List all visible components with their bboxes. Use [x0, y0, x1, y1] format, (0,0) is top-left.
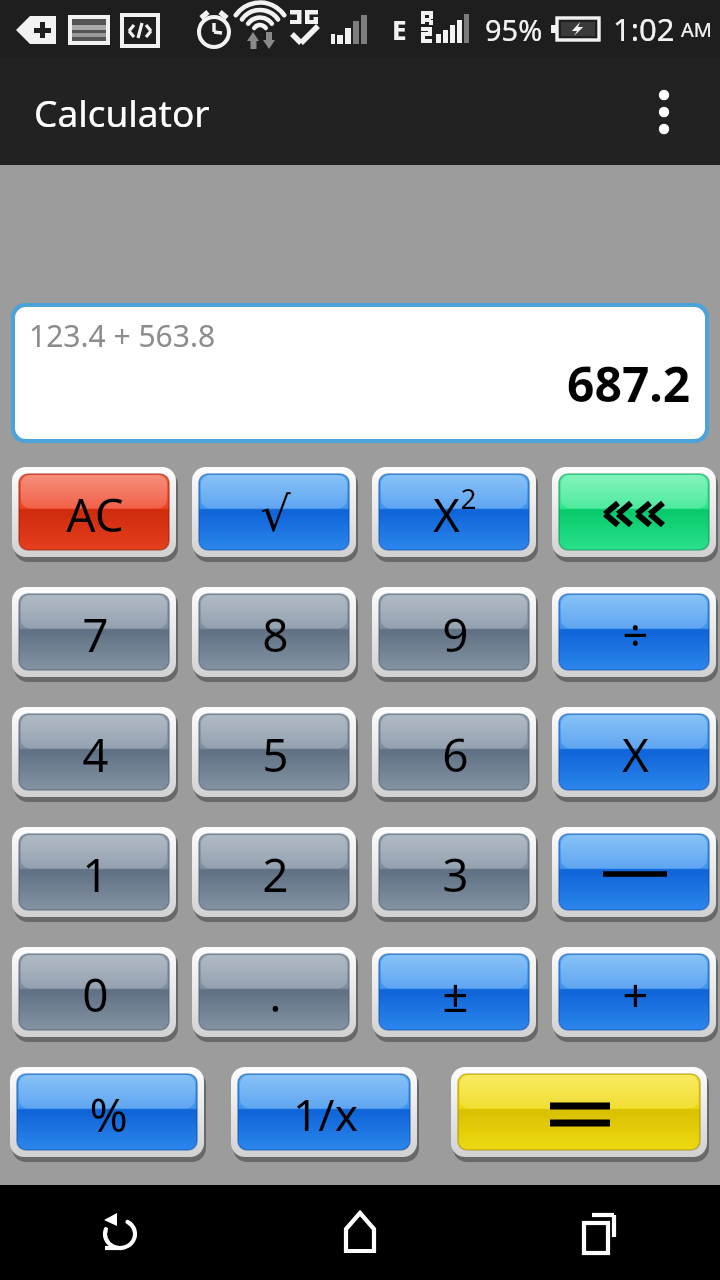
staticText: .	[269, 963, 282, 1026]
button[interactable]: Square	[372, 467, 538, 561]
staticText: E	[392, 12, 407, 47]
button[interactable]: Plus	[552, 947, 718, 1041]
staticText: AC	[66, 483, 124, 546]
button[interactable]: 5	[192, 707, 358, 801]
staticText: 687.2	[567, 351, 691, 416]
button[interactable]: Home	[240, 1185, 480, 1280]
button[interactable]: Decimal point	[192, 947, 358, 1041]
button[interactable]: Back	[0, 1185, 240, 1280]
staticText: +	[622, 963, 649, 1026]
staticText: ±	[442, 963, 469, 1026]
staticText: Calculator	[34, 87, 210, 137]
button[interactable]: 3	[372, 827, 538, 921]
staticText: √	[260, 486, 291, 542]
button[interactable]: Divide	[552, 587, 718, 681]
staticText: 1:02	[613, 8, 675, 50]
button[interactable]: Percent	[10, 1067, 206, 1161]
staticText: 123.4 + 563.8	[29, 315, 216, 356]
staticText: 6	[442, 723, 469, 786]
button[interactable]: Multiply	[552, 707, 718, 801]
staticText: 2	[460, 479, 477, 517]
staticText: 1/x	[293, 1084, 358, 1144]
staticText: ÷	[622, 603, 649, 666]
staticText: 1	[82, 843, 109, 906]
button[interactable]: 123.4 + 563.8	[15, 307, 705, 439]
button[interactable]: 7	[12, 587, 178, 681]
button[interactable]: 6	[372, 707, 538, 801]
staticText: 8	[262, 603, 289, 666]
staticText: 4	[82, 723, 109, 786]
button[interactable]: Backspace	[552, 467, 718, 561]
staticText: X	[433, 483, 460, 546]
button[interactable]: 2	[192, 827, 358, 921]
staticText: AM	[681, 16, 712, 43]
button[interactable]: All clear	[12, 467, 178, 561]
staticText: 95%	[485, 10, 543, 49]
button[interactable]: More options	[636, 76, 692, 148]
staticText: 2	[262, 843, 289, 906]
button[interactable]: Minus	[552, 827, 718, 921]
button[interactable]: 0	[12, 947, 178, 1041]
button[interactable]: 1	[12, 827, 178, 921]
button[interactable]: Square root	[192, 467, 358, 561]
button[interactable]: Plus minus	[372, 947, 538, 1041]
staticText: X	[622, 723, 649, 786]
button[interactable]: Recent apps	[480, 1185, 720, 1280]
staticText: 5	[262, 723, 289, 786]
staticText: 0	[82, 963, 109, 1026]
staticText: 7	[82, 603, 109, 666]
staticText: 9	[442, 603, 469, 666]
button[interactable]: Equals	[451, 1067, 709, 1161]
button[interactable]: 4	[12, 707, 178, 801]
button[interactable]: 9	[372, 587, 538, 681]
button[interactable]: 8	[192, 587, 358, 681]
staticText: %	[89, 1083, 128, 1146]
staticText: 3	[442, 843, 469, 906]
button[interactable]: Reciprocal	[231, 1067, 419, 1161]
